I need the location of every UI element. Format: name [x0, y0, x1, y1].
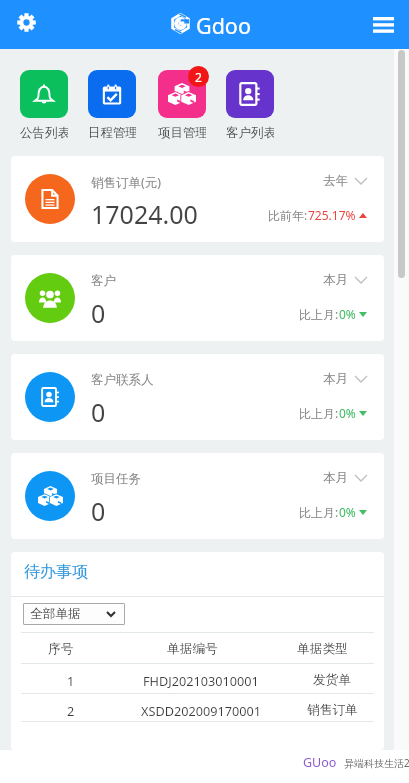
staticText: 本月 — [323, 371, 348, 387]
button[interactable]: 公告列表 — [20, 70, 68, 141]
staticText: 单据编号 — [167, 641, 218, 657]
button[interactable]: 客户列表 — [226, 70, 274, 141]
button[interactable]: 1 — [11, 665, 384, 695]
staticText: 0% — [339, 504, 356, 520]
staticText: 去年 — [323, 173, 348, 189]
button[interactable]: 全部单据 — [23, 603, 125, 625]
button[interactable]: 客户 — [11, 255, 384, 341]
staticText: 比上月: — [299, 504, 339, 520]
staticText: XSDD202009170001 — [141, 702, 262, 719]
button[interactable]: 序号 — [11, 634, 384, 664]
staticText: 销售订单 — [307, 702, 358, 718]
staticText: 公告列表 — [20, 125, 68, 141]
staticText: 2 — [195, 69, 202, 85]
staticText: 项目管理 — [158, 125, 206, 141]
staticText: Gdoo — [196, 11, 251, 40]
button[interactable]: Menu — [366, 9, 400, 40]
staticText: 比上月: — [299, 405, 339, 421]
staticText: 日程管理 — [88, 125, 136, 141]
staticText: 客户列表 — [226, 125, 274, 141]
staticText: 17024.00 — [91, 197, 198, 231]
staticText: 725.17% — [308, 207, 356, 223]
staticText: 1 — [67, 672, 75, 689]
staticText: 比前年: — [268, 207, 308, 223]
staticText: 0% — [339, 405, 356, 421]
staticText: 销售订单(元) — [91, 174, 162, 191]
button[interactable]: 项目管理 — [158, 70, 206, 141]
button[interactable]: 日程管理 — [88, 70, 136, 141]
staticText: 单据类型 — [297, 641, 348, 657]
staticText: 全部单据 — [30, 606, 81, 622]
staticText: 待办事项 — [24, 562, 88, 582]
button[interactable]: 销售订单(元) — [11, 156, 384, 242]
button[interactable]: Settings — [9, 5, 43, 40]
button[interactable]: 客户联系人 — [11, 354, 384, 440]
staticText: 异端科技生活2 — [344, 756, 409, 770]
staticText: 序号 — [48, 641, 74, 657]
staticText: 客户联系人 — [91, 372, 154, 388]
staticText: FHDJ202103010001 — [143, 672, 259, 689]
staticText: 本月 — [323, 470, 348, 486]
button[interactable]: 项目任务 — [11, 453, 384, 539]
staticText: 0% — [339, 306, 356, 322]
staticText: 项目任务 — [91, 471, 141, 487]
staticText: 0 — [91, 395, 106, 429]
staticText: GUoo — [303, 754, 337, 771]
staticText: 本月 — [323, 272, 348, 288]
staticText: 客户 — [91, 273, 116, 289]
staticText: 发货单 — [313, 672, 352, 688]
staticText: 0 — [91, 296, 106, 330]
staticText: 0 — [91, 494, 106, 528]
staticText: 2 — [67, 702, 75, 719]
button[interactable]: 2 — [11, 695, 384, 725]
staticText: 比上月: — [299, 306, 339, 322]
